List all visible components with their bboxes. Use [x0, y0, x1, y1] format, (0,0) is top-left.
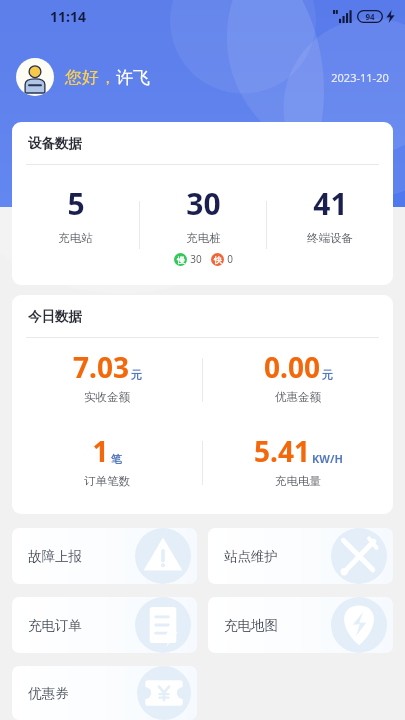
staticText: 优惠券 — [28, 685, 69, 702]
button[interactable]: 41 — [267, 165, 393, 285]
staticText: 充电桩 — [186, 231, 221, 245]
staticText: 订单笔数 — [84, 474, 130, 488]
staticText: 5.41 — [254, 432, 310, 470]
staticText: 0.00 — [264, 348, 320, 386]
staticText: 94 — [365, 11, 375, 22]
staticText: 终端设备 — [307, 231, 353, 245]
staticText: 慢 — [177, 255, 185, 265]
button[interactable]: 5 — [12, 165, 139, 285]
staticText: 充电订单 — [28, 617, 82, 634]
staticText: 充电电量 — [275, 474, 321, 488]
staticText: KW/H — [312, 451, 343, 466]
staticText: 1 — [92, 432, 109, 470]
staticText: 2023-11-20 — [331, 70, 389, 85]
staticText: 11:14 — [50, 7, 86, 26]
button[interactable]: 1 — [12, 422, 202, 504]
staticText: 设备数据 — [28, 135, 82, 152]
staticText: 5 — [67, 183, 85, 224]
staticText: 许飞 — [116, 67, 150, 88]
staticText: 实收金额 — [84, 390, 130, 404]
button[interactable]: 优惠券 — [12, 666, 197, 720]
button[interactable]: Profile — [16, 58, 54, 96]
staticText: 故障上报 — [28, 548, 82, 565]
staticText: 0 — [227, 252, 233, 266]
staticText: 站点维护 — [224, 548, 278, 565]
staticText: 优惠金额 — [275, 390, 321, 404]
button[interactable]: 充电地图 — [208, 597, 393, 653]
button[interactable]: 充电订单 — [12, 597, 197, 653]
staticText: 41 — [313, 183, 348, 224]
staticText: 7.03 — [73, 348, 129, 386]
staticText: 30 — [190, 252, 202, 266]
staticText: 今日数据 — [28, 308, 82, 325]
staticText: 快 — [214, 255, 222, 265]
button[interactable]: 站点维护 — [208, 528, 393, 584]
staticText: 充电站 — [58, 231, 93, 245]
button[interactable]: 故障上报 — [12, 528, 197, 584]
staticText: 元 — [322, 368, 333, 382]
staticText: 元 — [131, 368, 142, 382]
staticText: 您好， — [65, 67, 116, 88]
staticText: 30 — [186, 183, 221, 224]
button[interactable]: 30 — [140, 165, 266, 285]
button[interactable]: 0.00 — [203, 338, 393, 422]
staticText: 充电地图 — [224, 617, 278, 634]
button[interactable]: 7.03 — [12, 338, 202, 422]
staticText: 笔 — [111, 452, 122, 466]
button[interactable]: 5.41 — [203, 422, 393, 504]
